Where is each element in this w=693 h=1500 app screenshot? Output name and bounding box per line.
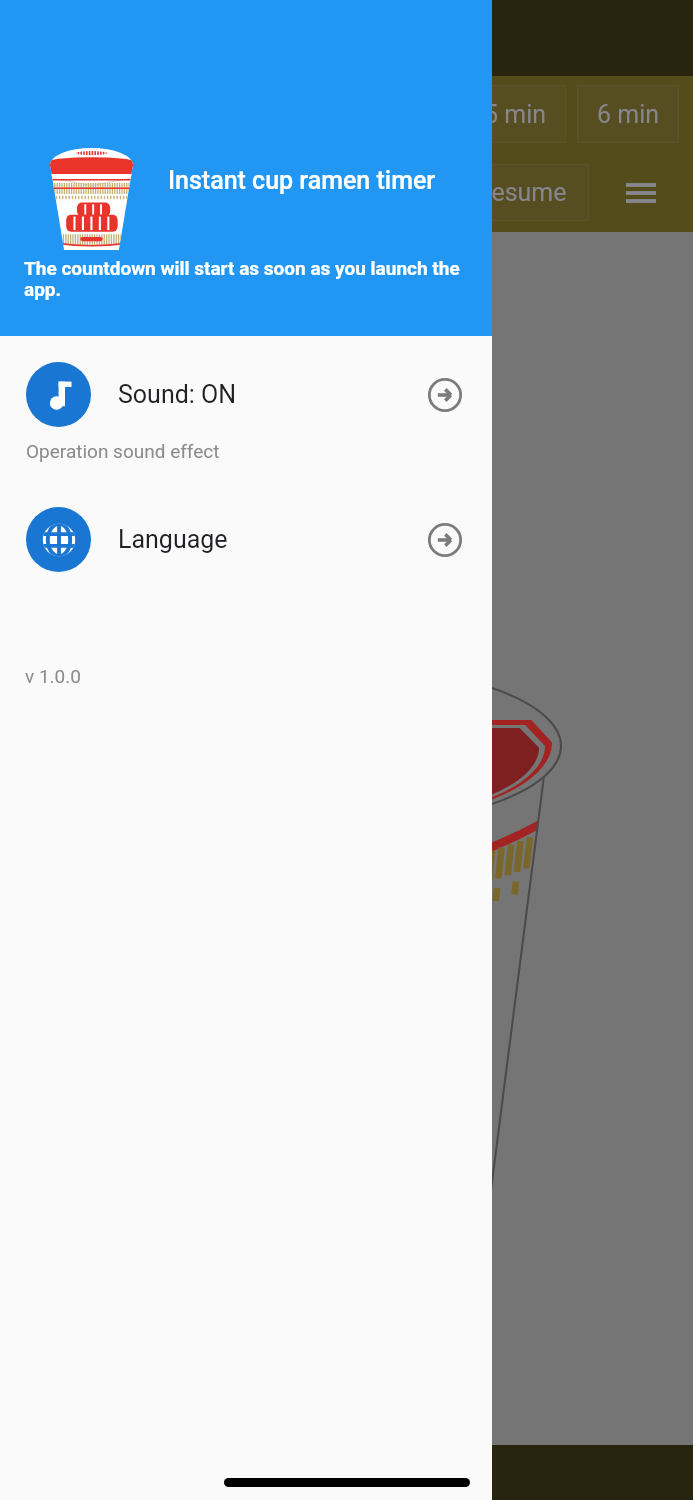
button[interactable]: Sound: ON — [0, 362, 492, 462]
staticText: Resume — [476, 178, 567, 207]
staticText: Operation sound effect — [26, 440, 220, 462]
staticText: 6 min — [597, 100, 660, 129]
staticText: Instant cup ramen timer — [168, 166, 436, 195]
button[interactable]: 6 min — [577, 85, 679, 143]
button[interactable]: Menu — [607, 164, 675, 221]
button[interactable]: Language — [0, 507, 492, 572]
button[interactable]: 5 min — [464, 85, 566, 143]
staticText: Language — [118, 525, 228, 554]
button[interactable]: Resume — [453, 164, 589, 221]
button[interactable]: Close navigation drawer — [0, 0, 693, 1500]
staticText: Sound: ON — [118, 380, 237, 409]
staticText: The countdown will start as soon as you … — [24, 257, 472, 300]
staticText: v 1.0.0 — [25, 665, 81, 687]
staticText: 5 min — [484, 100, 547, 129]
